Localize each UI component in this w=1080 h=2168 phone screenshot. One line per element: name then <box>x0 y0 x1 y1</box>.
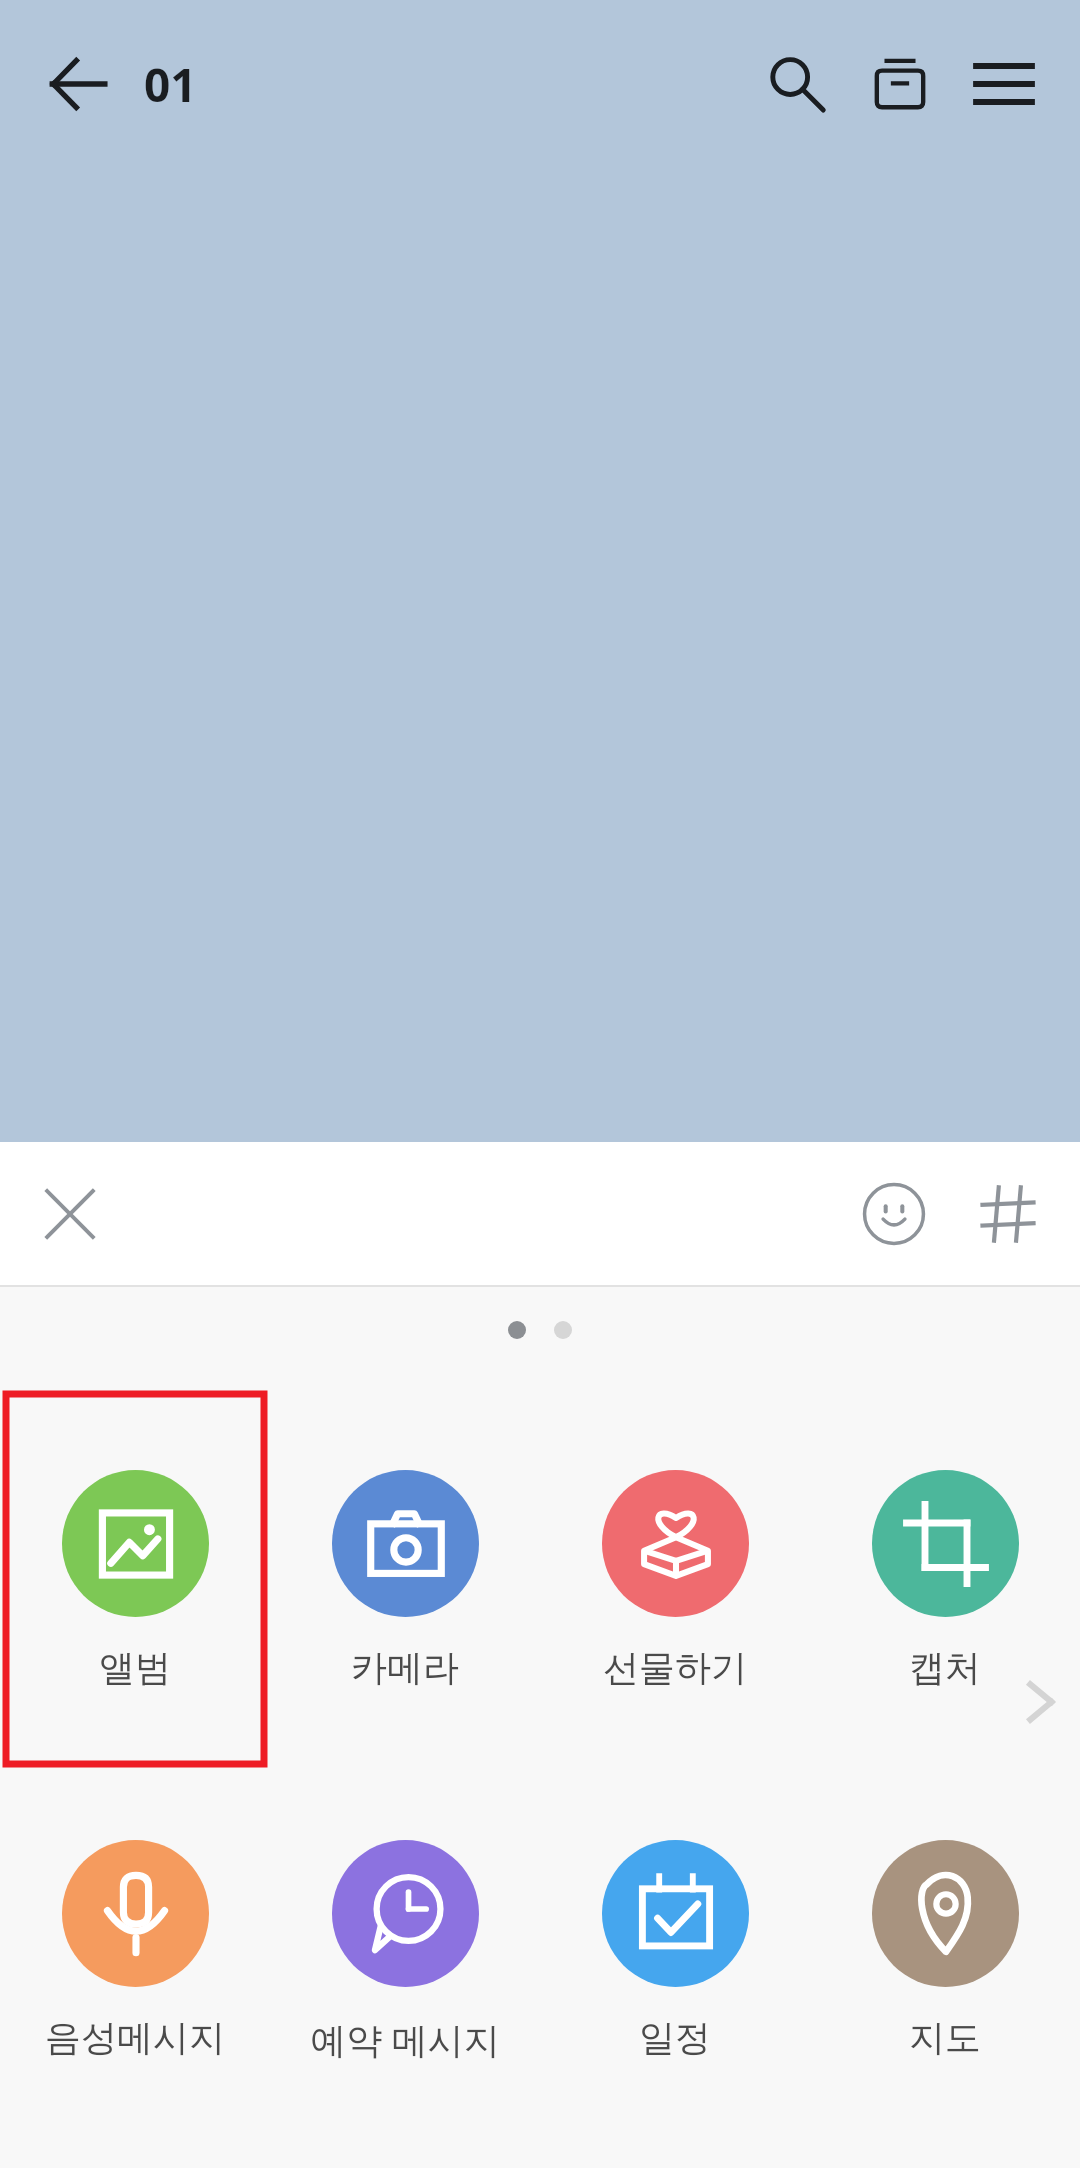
button[interactable]: 지도 <box>810 1764 1080 2134</box>
staticText: 앨범 <box>99 1645 171 1690</box>
staticText: 캡처 <box>909 1645 981 1690</box>
button[interactable]: Close <box>20 1164 120 1264</box>
button[interactable]: Emoticon <box>844 1164 944 1264</box>
button[interactable]: 앨범 <box>0 1394 270 1764</box>
button[interactable]: 예약 메시지 <box>270 1764 540 2134</box>
staticText: 지도 <box>909 2015 981 2060</box>
button[interactable]: Hashtag <box>958 1164 1058 1264</box>
staticText: 예약 메시지 <box>310 2015 500 2064</box>
staticText: 선물하기 <box>603 1645 747 1690</box>
button[interactable]: Menu <box>952 32 1056 136</box>
button[interactable]: 음성메시지 <box>0 1764 270 2134</box>
button[interactable]: Back <box>30 36 126 132</box>
staticText: 카메라 <box>351 1645 459 1690</box>
button[interactable]: Next page <box>1000 1662 1080 1742</box>
button[interactable]: 선물하기 <box>540 1394 810 1764</box>
button[interactable]: Archive <box>848 32 952 136</box>
staticText: 01 <box>144 53 197 116</box>
button[interactable]: 일정 <box>540 1764 810 2134</box>
staticText: 일정 <box>639 2015 711 2060</box>
button[interactable]: 카메라 <box>270 1394 540 1764</box>
staticText: 음성메시지 <box>45 2015 225 2060</box>
button[interactable]: Search <box>744 32 848 136</box>
button[interactable]: 캡처 <box>810 1394 1080 1764</box>
